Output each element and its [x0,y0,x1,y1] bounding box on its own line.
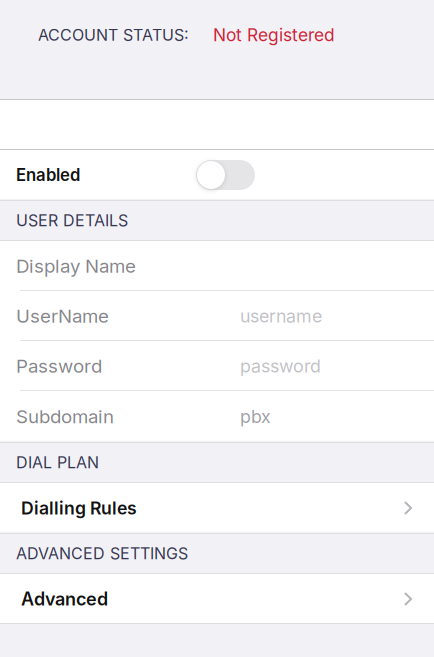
staticText: Advanced [21,588,108,610]
staticText: Password [16,355,102,377]
staticText: ACCOUNT STATUS: [38,25,189,45]
staticText: Enabled [16,165,80,185]
staticText: Not Registered [213,24,335,45]
staticText: ADVANCED SETTINGS [16,544,188,563]
button[interactable]: Advanced [0,574,434,624]
staticText: password [240,355,321,377]
button[interactable]: Enabled [0,150,434,200]
staticText: username [240,305,322,327]
staticText: Display Name [16,255,136,277]
staticText: Dialling Rules [21,497,137,519]
button[interactable]: Dialling Rules [0,483,434,533]
staticText: pbx [240,406,271,427]
staticText: UserName [16,305,109,327]
staticText: DIAL PLAN [16,453,99,472]
staticText: USER DETAILS [16,211,128,230]
staticText: Subdomain [16,405,114,428]
